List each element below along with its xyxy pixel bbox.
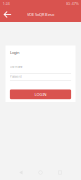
button[interactable]: LOGIN — [10, 89, 71, 99]
staticText: VOE SoQR Beso — [27, 12, 54, 17]
staticText: 1:24 — [2, 1, 9, 6]
button[interactable]: Back — [0, 7, 15, 22]
staticText: LOGIN — [34, 92, 46, 97]
staticText: 4G 47% — [65, 1, 78, 6]
staticText: Password — [10, 75, 22, 78]
staticText: Login — [10, 50, 19, 55]
staticText: Username — [10, 65, 23, 69]
